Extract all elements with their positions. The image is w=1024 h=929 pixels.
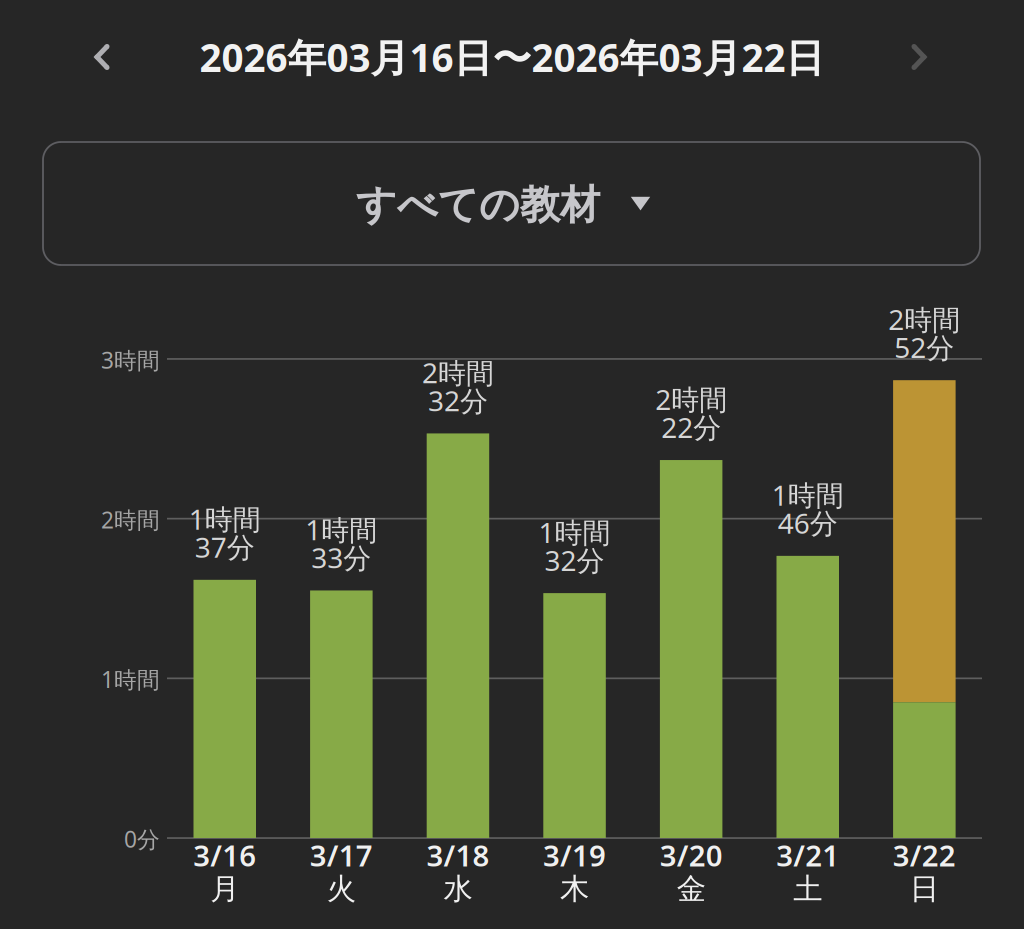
staticText: 52分 — [894, 329, 954, 366]
staticText: 木 — [560, 871, 589, 907]
staticText: すべての教材 — [356, 180, 600, 229]
staticText: 0分 — [124, 824, 160, 854]
staticText: 1時間 — [305, 511, 377, 548]
staticText: 3/19 — [543, 835, 606, 874]
staticText: 2時間 — [655, 380, 727, 418]
staticText: 1時間 — [189, 500, 261, 537]
staticText: 水 — [443, 871, 472, 907]
staticText: 2時間 — [888, 301, 960, 338]
staticText: 3時間 — [101, 345, 160, 375]
staticText: 3/20 — [660, 835, 723, 874]
staticText: 月 — [210, 871, 239, 907]
staticText: 3/18 — [426, 835, 489, 874]
staticText: 1時間 — [772, 476, 844, 513]
staticText: 火 — [327, 871, 356, 907]
staticText: 46分 — [778, 504, 838, 541]
button[interactable]: すべての教材 — [43, 142, 980, 265]
staticText: 金 — [677, 871, 706, 907]
staticText: 2時間 — [101, 504, 160, 535]
staticText: 22分 — [661, 408, 721, 446]
staticText: 1時間 — [101, 664, 160, 694]
staticText: 32分 — [428, 382, 488, 419]
staticText: 37分 — [195, 528, 255, 565]
staticText: 1時間 — [538, 513, 610, 551]
staticText: 3/21 — [776, 835, 839, 874]
staticText: 日 — [910, 871, 939, 907]
staticText: 3/17 — [310, 835, 373, 874]
staticText: 32分 — [544, 541, 604, 579]
staticText: 33分 — [311, 539, 371, 576]
button[interactable]: Next week — [889, 27, 949, 87]
staticText: 2時間 — [422, 354, 494, 391]
staticText: 3/16 — [193, 835, 256, 874]
button[interactable]: Previous week — [72, 27, 132, 87]
staticText: 3/22 — [893, 835, 956, 874]
staticText: 土 — [793, 871, 822, 907]
staticText: 2026年03月16日〜2026年03月22日 — [199, 31, 824, 83]
